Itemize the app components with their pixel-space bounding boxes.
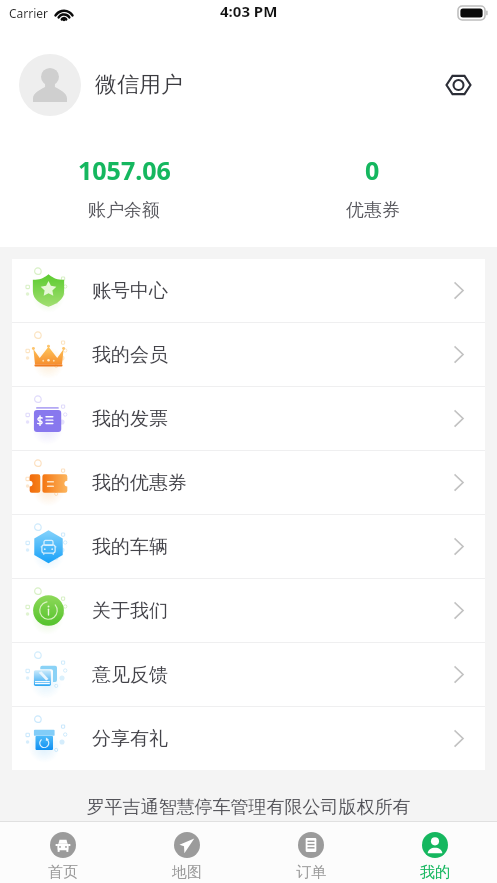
staticText: 我的会员 (92, 343, 168, 367)
staticText: Carrier (9, 5, 49, 21)
button[interactable]: 1057.06 (0, 129, 248, 247)
button[interactable]: Settings (438, 65, 478, 105)
button[interactable]: 关于我们 (12, 579, 485, 642)
button[interactable]: 0 (248, 129, 497, 247)
staticText: 我的发票 (92, 407, 168, 431)
button[interactable]: 我的 (373, 822, 497, 883)
button[interactable]: 我的会员 (12, 323, 485, 386)
staticText: 4:03 PM (220, 1, 278, 21)
button[interactable]: 我的优惠券 (12, 451, 485, 514)
staticText: 分享有礼 (92, 727, 168, 751)
button[interactable]: 我的发票 (12, 387, 485, 450)
staticText: 1057.06 (78, 153, 171, 187)
staticText: 我的车辆 (92, 535, 168, 559)
button[interactable]: 分享有礼 (12, 707, 485, 770)
button[interactable]: 我的车辆 (12, 515, 485, 578)
staticText: 地图 (172, 863, 202, 882)
staticText: 首页 (48, 863, 78, 882)
button[interactable]: 地图 (125, 822, 249, 883)
staticText: 账号中心 (92, 279, 168, 303)
button[interactable]: 意见反馈 (12, 643, 485, 706)
staticText: 账户余额 (88, 199, 160, 222)
staticText: 我的 (420, 863, 450, 882)
staticText: 订单 (296, 863, 326, 882)
staticText: 罗平吉通智慧停车管理有限公司版权所有 (0, 796, 497, 819)
staticText: 我的优惠券 (92, 471, 187, 495)
button[interactable]: 账号中心 (12, 259, 485, 322)
staticText: 优惠券 (346, 199, 400, 222)
button[interactable]: Avatar (19, 54, 81, 116)
button[interactable]: 订单 (249, 822, 373, 883)
staticText: 微信用户 (95, 71, 183, 99)
staticText: 意见反馈 (92, 663, 168, 687)
button[interactable]: 首页 (0, 822, 125, 883)
staticText: 0 (365, 153, 380, 187)
staticText: 关于我们 (92, 599, 168, 623)
